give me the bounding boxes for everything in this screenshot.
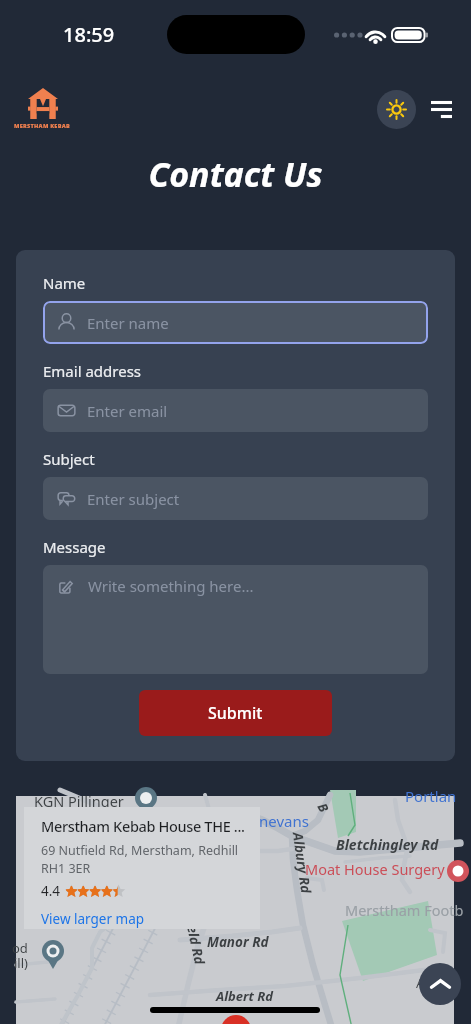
staticText: Message [43, 537, 106, 557]
staticText: ill) [14, 954, 28, 972]
staticText: MERSTHAM KEBAB [14, 122, 71, 130]
staticText: Portlan [405, 786, 457, 806]
button[interactable]: Toggle light mode [377, 90, 416, 129]
staticText: Mersttham Footb [345, 900, 464, 920]
button[interactable]: Enter name [43, 301, 428, 344]
staticText: Albu [416, 974, 444, 992]
button[interactable]: Enter subject [43, 477, 428, 520]
staticText: nevans [259, 811, 309, 831]
button[interactable]: Open menu [427, 95, 455, 123]
staticText: 18:59 [63, 21, 115, 48]
staticText: Contact Us [0, 151, 471, 197]
staticText: Write something here... [88, 576, 254, 596]
staticText: Enter name [87, 313, 169, 333]
button[interactable]: View larger map [41, 910, 145, 928]
button[interactable]: Scroll to top [419, 963, 461, 1005]
staticText: Enter email [87, 401, 168, 421]
staticText: Bletchingley Rd [336, 835, 439, 854]
staticText: Submit [208, 702, 263, 724]
staticText: Albury Rd [289, 831, 315, 895]
staticText: Merstham Kebab House THE ... [41, 816, 245, 836]
staticText: eld Rd [183, 924, 209, 966]
button[interactable]: Merstham Kebab House THE ... [24, 807, 260, 929]
staticText: Manor Rd [207, 933, 269, 951]
staticText: 69 Nutfield Rd, Merstham, Redhill RH1 3E… [41, 842, 239, 877]
staticText: Moat House Surgery [305, 859, 445, 879]
staticText: 4.4 [41, 882, 61, 900]
button[interactable]: Enter email [43, 389, 428, 432]
staticText: Email address [43, 361, 142, 381]
staticText: Albert Rd [216, 987, 274, 1005]
button[interactable]: Write something here... [43, 565, 428, 674]
staticText: Subject [43, 449, 95, 469]
staticText: Enter subject [87, 489, 180, 509]
staticText: B [313, 800, 333, 816]
staticText: KGN Pillinger [34, 791, 124, 811]
button[interactable]: Submit [139, 690, 332, 736]
staticText: od [12, 939, 28, 957]
staticText: Name [43, 273, 86, 293]
